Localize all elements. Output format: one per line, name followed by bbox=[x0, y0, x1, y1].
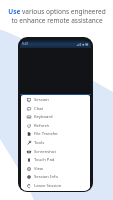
button[interactable]: File Transfer bbox=[21, 129, 90, 138]
staticText: to enhance remote assistance bbox=[11, 16, 103, 25]
staticText: Touch Pad bbox=[34, 157, 55, 163]
button[interactable]: Refresh bbox=[21, 121, 90, 130]
staticText: 9:41 bbox=[22, 42, 29, 46]
button[interactable]: Tools bbox=[21, 138, 90, 147]
button[interactable]: Leave Session bbox=[21, 181, 90, 190]
button[interactable]: Chat bbox=[21, 104, 90, 113]
staticText: Session Info bbox=[34, 174, 58, 180]
button[interactable]: Session bbox=[21, 95, 90, 104]
button[interactable]: Keyboard bbox=[21, 112, 90, 121]
staticText: Screenshot bbox=[34, 149, 56, 155]
staticText: Refresh bbox=[34, 123, 50, 129]
staticText: File Transfer bbox=[34, 131, 59, 137]
staticText: Tools bbox=[34, 140, 45, 146]
button[interactable]: Session Info bbox=[21, 172, 90, 181]
staticText: Session bbox=[34, 97, 49, 103]
staticText: Leave Session bbox=[34, 183, 62, 189]
staticText: Keyboard bbox=[34, 114, 53, 120]
button[interactable]: Screenshot bbox=[21, 147, 90, 156]
staticText: View bbox=[34, 166, 44, 172]
button[interactable]: View bbox=[21, 164, 90, 173]
button[interactable]: Touch Pad bbox=[21, 155, 90, 164]
staticText: Use various options engineered bbox=[8, 7, 106, 16]
staticText: Chat bbox=[34, 106, 44, 112]
